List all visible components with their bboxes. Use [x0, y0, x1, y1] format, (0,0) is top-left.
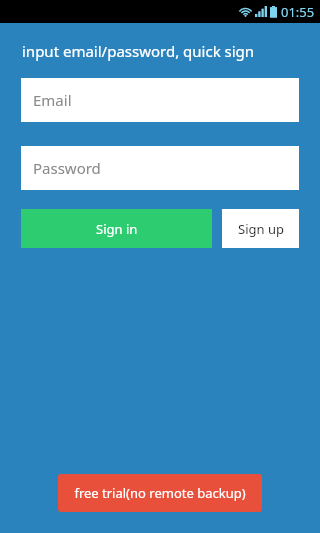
button[interactable]: Sign up	[222, 209, 299, 248]
button[interactable]: Password	[21, 146, 299, 190]
staticText: 01:55	[281, 3, 315, 21]
button[interactable]: Email	[21, 78, 299, 122]
staticText: free trial(no remote backup)	[74, 484, 246, 502]
staticText: input email/password, quick sign	[22, 41, 255, 61]
staticText: Sign up	[238, 220, 284, 238]
staticText: Sign in	[96, 220, 138, 238]
button[interactable]: free trial(no remote backup)	[58, 474, 262, 512]
staticText: Email	[33, 90, 72, 110]
button[interactable]: Sign in	[21, 209, 212, 248]
staticText: Password	[33, 158, 101, 178]
